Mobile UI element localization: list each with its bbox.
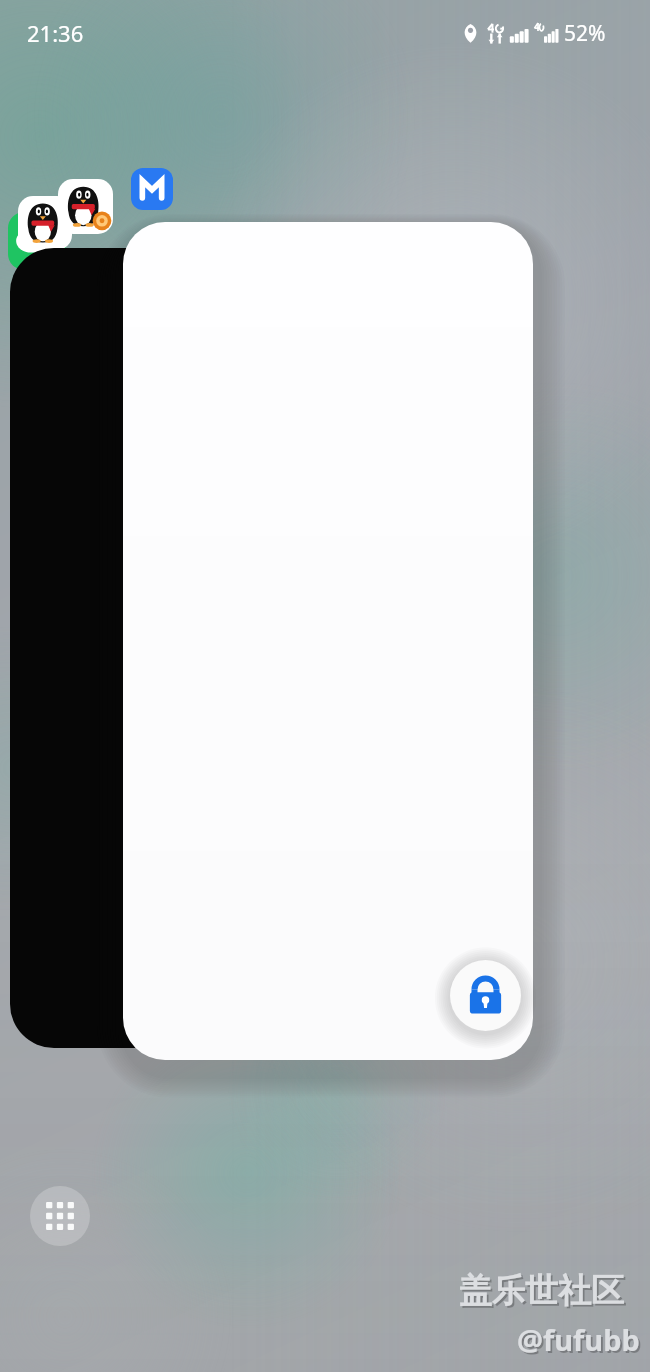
button[interactable]: Lock app — [450, 960, 521, 1031]
staticText: 21:36 — [27, 18, 84, 48]
staticText: @fufubb — [519, 1322, 642, 1361]
button[interactable]: WeChat — [8, 212, 66, 270]
button[interactable]: App drawer — [30, 1186, 90, 1246]
staticText: 盖乐世社区 — [461, 1272, 626, 1314]
button[interactable]: QQ — [18, 196, 72, 250]
button[interactable]: App preview — [123, 222, 533, 1060]
button[interactable]: Background app card — [10, 248, 310, 1048]
staticText: @fufubb — [517, 1320, 640, 1359]
staticText: 盖乐世社区 — [459, 1270, 624, 1312]
button[interactable]: Meitu — [131, 168, 173, 210]
staticText: 52% — [564, 19, 606, 48]
button[interactable]: QQ Lite — [58, 179, 113, 234]
